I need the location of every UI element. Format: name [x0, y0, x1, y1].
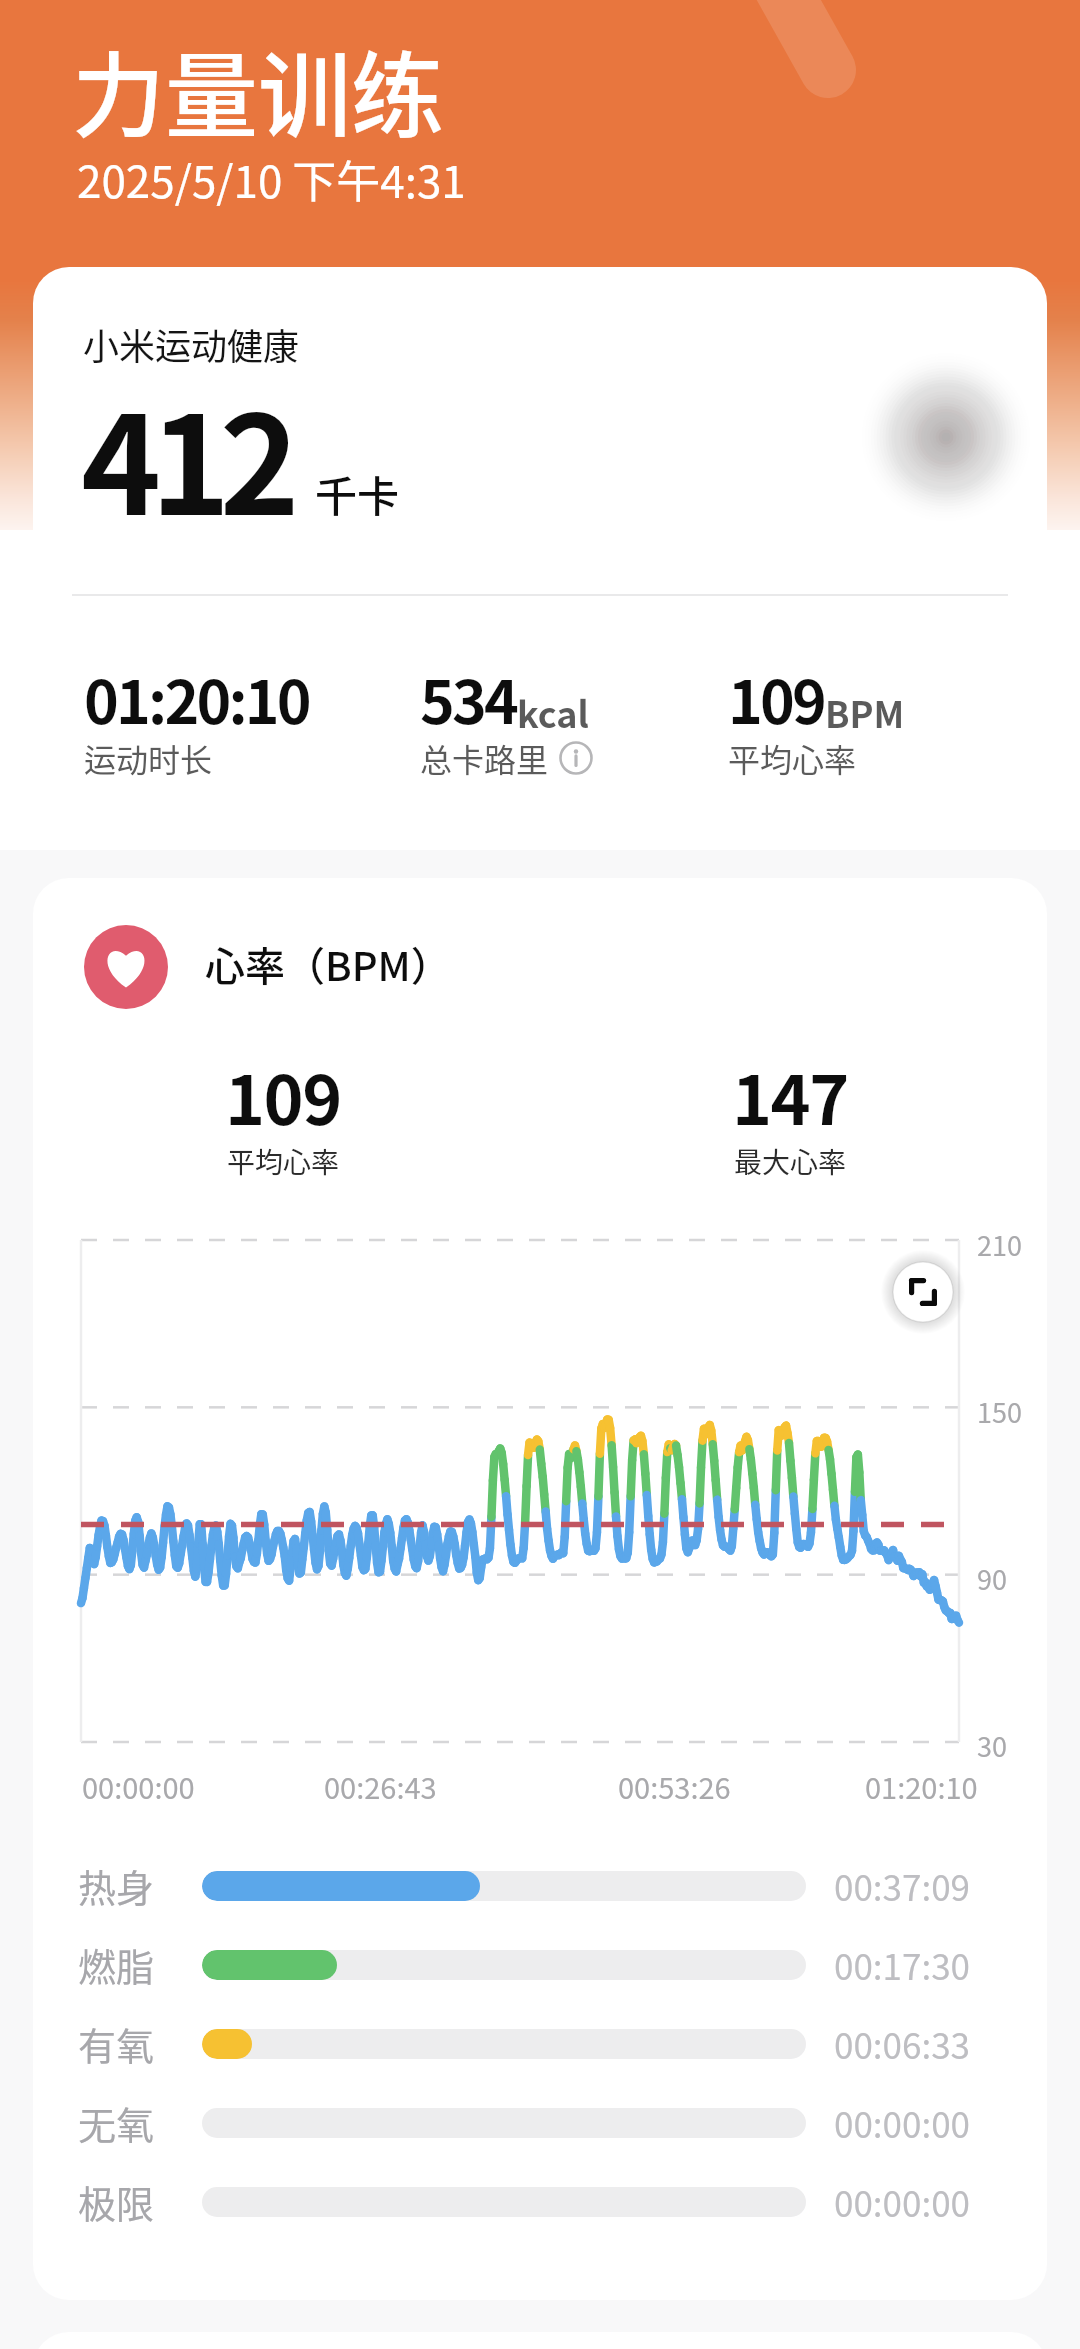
- staticText: 最大心率: [734, 1141, 847, 1182]
- staticText: 燃脂: [78, 1937, 155, 1992]
- staticText: 平均心率: [728, 735, 857, 781]
- staticText: 412: [81, 357, 289, 554]
- staticText: 30: [977, 1726, 1007, 1765]
- staticText: 534: [420, 656, 517, 741]
- button[interactable]: 01:20:10: [84, 656, 384, 776]
- staticText: 热身: [78, 1858, 155, 1913]
- staticText: 平均心率: [227, 1141, 340, 1182]
- staticText: 00:37:09: [834, 1860, 971, 1911]
- button[interactable]: 热身: [0, 1846, 1080, 1925]
- button[interactable]: 147: [630, 1040, 950, 1175]
- staticText: 00:00:00: [834, 2176, 971, 2227]
- button[interactable]: 109: [728, 656, 1028, 776]
- button[interactable]: 燃脂: [0, 1925, 1080, 2004]
- staticText: 00:06:33: [834, 2018, 971, 2069]
- staticText: 00:53:26: [618, 1765, 731, 1807]
- staticText: 极限: [78, 2174, 155, 2229]
- button[interactable]: 有氧: [0, 2004, 1080, 2083]
- staticText: 00:17:30: [834, 1939, 971, 1990]
- staticText: 147: [732, 1046, 848, 1144]
- button[interactable]: Expand chart: [893, 1262, 953, 1322]
- staticText: 2025/5/10 下午4:31: [77, 147, 466, 211]
- staticText: 90: [977, 1559, 1007, 1598]
- staticText: 总卡路里: [420, 735, 549, 781]
- staticText: 无氧: [78, 2095, 155, 2150]
- staticText: BPM: [825, 686, 905, 738]
- staticText: 109: [225, 1046, 341, 1144]
- button[interactable]: 极限: [0, 2162, 1080, 2241]
- staticText: 有氧: [78, 2016, 155, 2071]
- staticText: 00:00:00: [834, 2097, 971, 2148]
- button[interactable]: 心率（BPM）: [84, 925, 451, 1009]
- staticText: 01:20:10: [865, 1765, 978, 1807]
- staticText: 01:20:10: [84, 656, 309, 741]
- staticText: kcal: [517, 686, 589, 738]
- button[interactable]: 无氧: [0, 2083, 1080, 2162]
- staticText: 109: [728, 656, 825, 741]
- button[interactable]: 534: [420, 656, 720, 776]
- staticText: 千卡: [315, 463, 400, 524]
- staticText: 心率（BPM）: [205, 935, 451, 993]
- staticText: 小米运动健康: [83, 318, 300, 370]
- staticText: 00:00:00: [82, 1765, 195, 1807]
- staticText: 00:26:43: [324, 1765, 437, 1807]
- staticText: 150: [977, 1392, 1022, 1431]
- staticText: 210: [977, 1225, 1022, 1264]
- staticText: 力量训练: [72, 22, 444, 157]
- staticText: 运动时长: [84, 735, 213, 781]
- button[interactable]: 109: [123, 1040, 443, 1175]
